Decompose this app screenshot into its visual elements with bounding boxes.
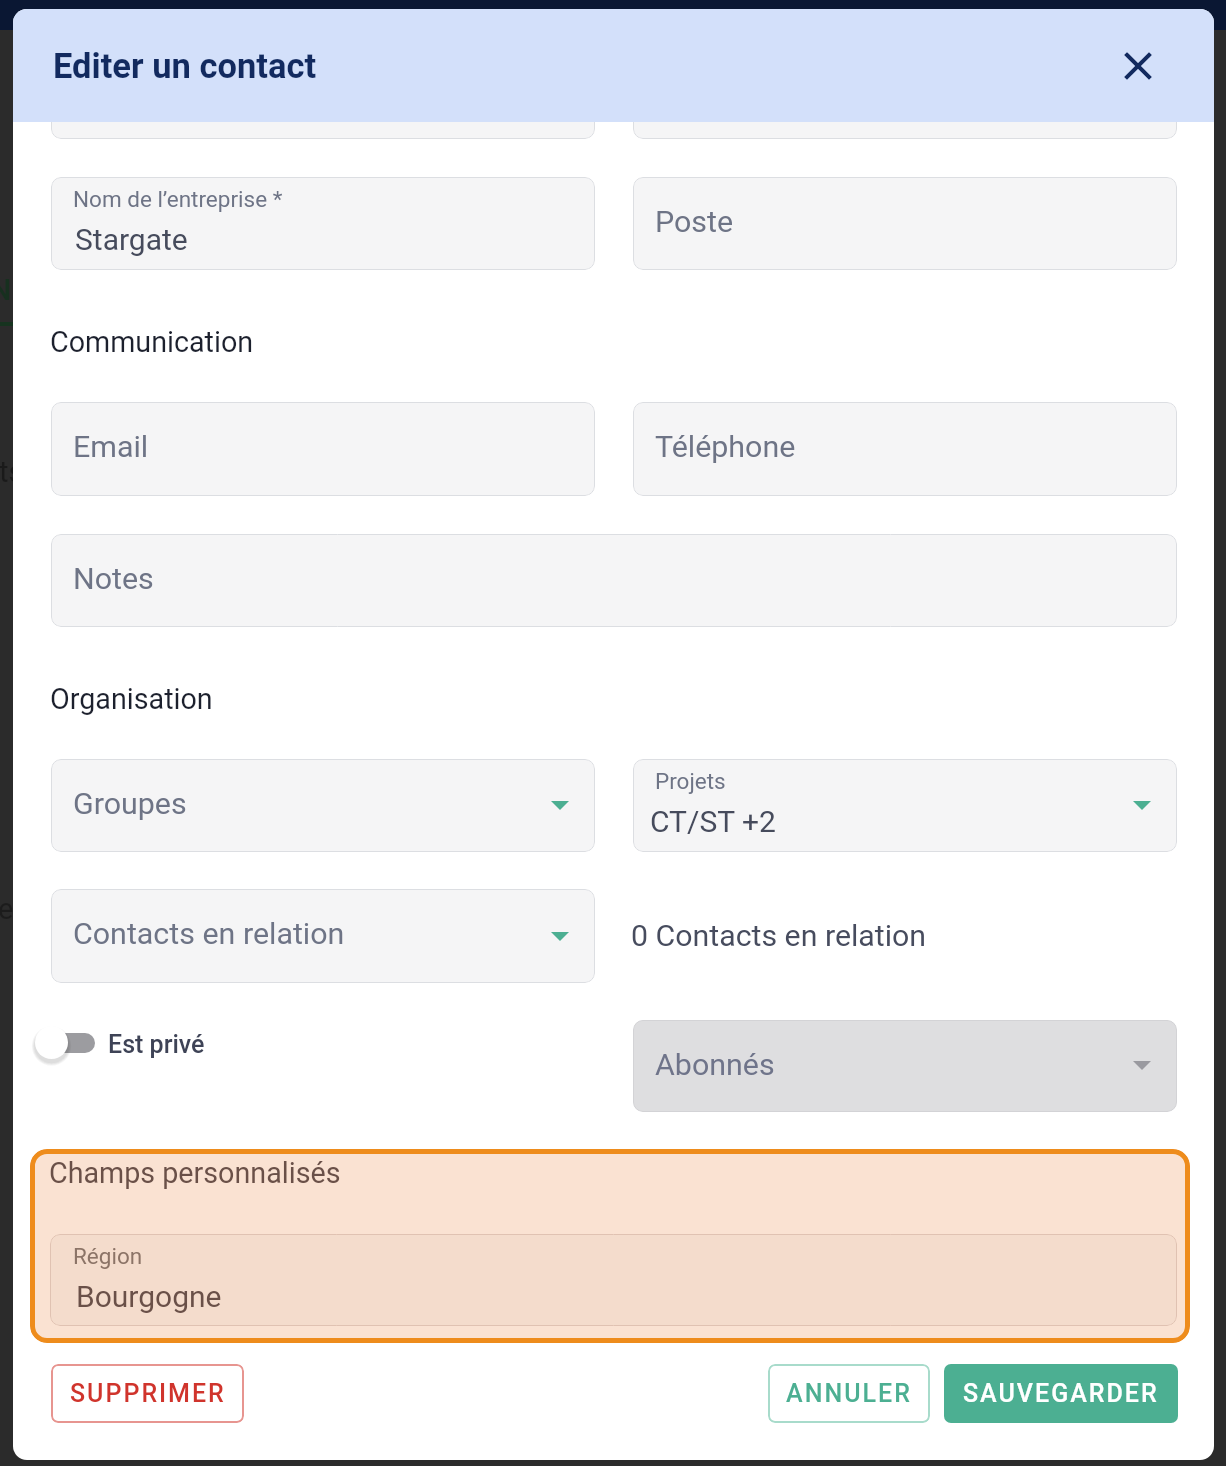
- button[interactable]: Téléphone: [633, 402, 1177, 496]
- button[interactable]: [51, 46, 595, 139]
- button[interactable]: Nom de l’entreprise *: [51, 177, 595, 270]
- button[interactable]: Notes: [51, 534, 1177, 627]
- staticText: ANNULER: [786, 1379, 912, 1408]
- button[interactable]: SAUVEGARDER: [944, 1364, 1178, 1423]
- staticText: Groupes: [73, 786, 187, 822]
- staticText: Téléphone: [655, 429, 796, 465]
- staticText: Champs personnalisés: [49, 1156, 341, 1190]
- staticText: Est privé: [108, 1030, 205, 1059]
- staticText: Organisation: [50, 682, 213, 716]
- staticText: CT/ST +2: [650, 804, 776, 839]
- button[interactable]: Contacts en relation: [51, 889, 595, 983]
- button[interactable]: SUPPRIMER: [51, 1364, 244, 1423]
- button[interactable]: Abonnés: [633, 1020, 1177, 1112]
- button[interactable]: Projets: [633, 759, 1177, 852]
- staticText: N: [0, 272, 3, 307]
- staticText: Contacts en relation: [73, 916, 345, 952]
- button[interactable]: Fermer: [1112, 40, 1164, 92]
- staticText: Notes: [73, 561, 154, 597]
- staticText: SAUVEGARDER: [963, 1379, 1159, 1408]
- staticText: Projets: [655, 768, 726, 794]
- staticText: ts: [0, 455, 12, 489]
- staticText: Région: [73, 1243, 143, 1269]
- button[interactable]: Est privé: [21, 1011, 231, 1077]
- staticText: Editer un contact: [53, 46, 317, 86]
- staticText: Stargate: [75, 222, 188, 257]
- button[interactable]: Groupes: [51, 759, 595, 852]
- staticText: e: [0, 892, 11, 926]
- staticText: Poste: [655, 204, 734, 240]
- staticText: 0 Contacts en relation: [631, 918, 927, 954]
- staticText: SUPPRIMER: [70, 1379, 226, 1408]
- button[interactable]: Région: [50, 1234, 1177, 1326]
- button[interactable]: Poste: [633, 177, 1177, 270]
- staticText: Abonnés: [655, 1047, 775, 1083]
- button[interactable]: [633, 46, 1177, 139]
- button[interactable]: Email: [51, 402, 595, 496]
- staticText: Nom de l’entreprise *: [73, 186, 283, 212]
- staticText: Communication: [50, 325, 254, 359]
- staticText: Email: [73, 429, 149, 465]
- staticText: Bourgogne: [76, 1279, 222, 1314]
- button[interactable]: ANNULER: [768, 1364, 930, 1423]
